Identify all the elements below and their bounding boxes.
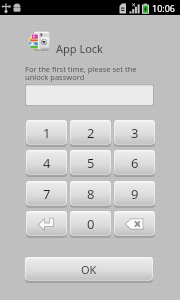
button[interactable]: 9 — [114, 181, 155, 207]
button[interactable]: 2 — [70, 120, 111, 146]
button[interactable]: 1 — [26, 120, 67, 146]
button[interactable]: 6 — [114, 150, 155, 176]
staticText: 8 — [87, 185, 95, 203]
button[interactable]: OK — [25, 257, 153, 282]
button[interactable]: 7 — [26, 181, 67, 207]
button[interactable]: 8 — [70, 181, 111, 207]
staticText: App Lock — [56, 41, 103, 56]
button[interactable]: 0 — [70, 211, 111, 237]
staticText: 10:06 — [152, 2, 176, 14]
button[interactable]: 4 — [26, 150, 67, 176]
staticText: For the first time, please set the unloc… — [25, 64, 137, 82]
staticText: OK — [81, 262, 97, 277]
staticText: 2 — [87, 124, 95, 142]
staticText: 7 — [43, 185, 51, 203]
staticText: 9 — [131, 185, 139, 203]
button[interactable]: 5 — [70, 150, 111, 176]
button[interactable] — [25, 84, 154, 106]
staticText: 3 — [131, 124, 139, 142]
button[interactable]: Backspace — [114, 211, 155, 237]
staticText: 0 — [87, 215, 95, 233]
staticText: 1 — [43, 124, 51, 142]
staticText: 5 — [87, 154, 95, 172]
button[interactable]: Enter — [26, 211, 67, 237]
button[interactable]: 3 — [114, 120, 155, 146]
staticText: 4 — [43, 154, 51, 172]
staticText: 6 — [131, 154, 139, 172]
